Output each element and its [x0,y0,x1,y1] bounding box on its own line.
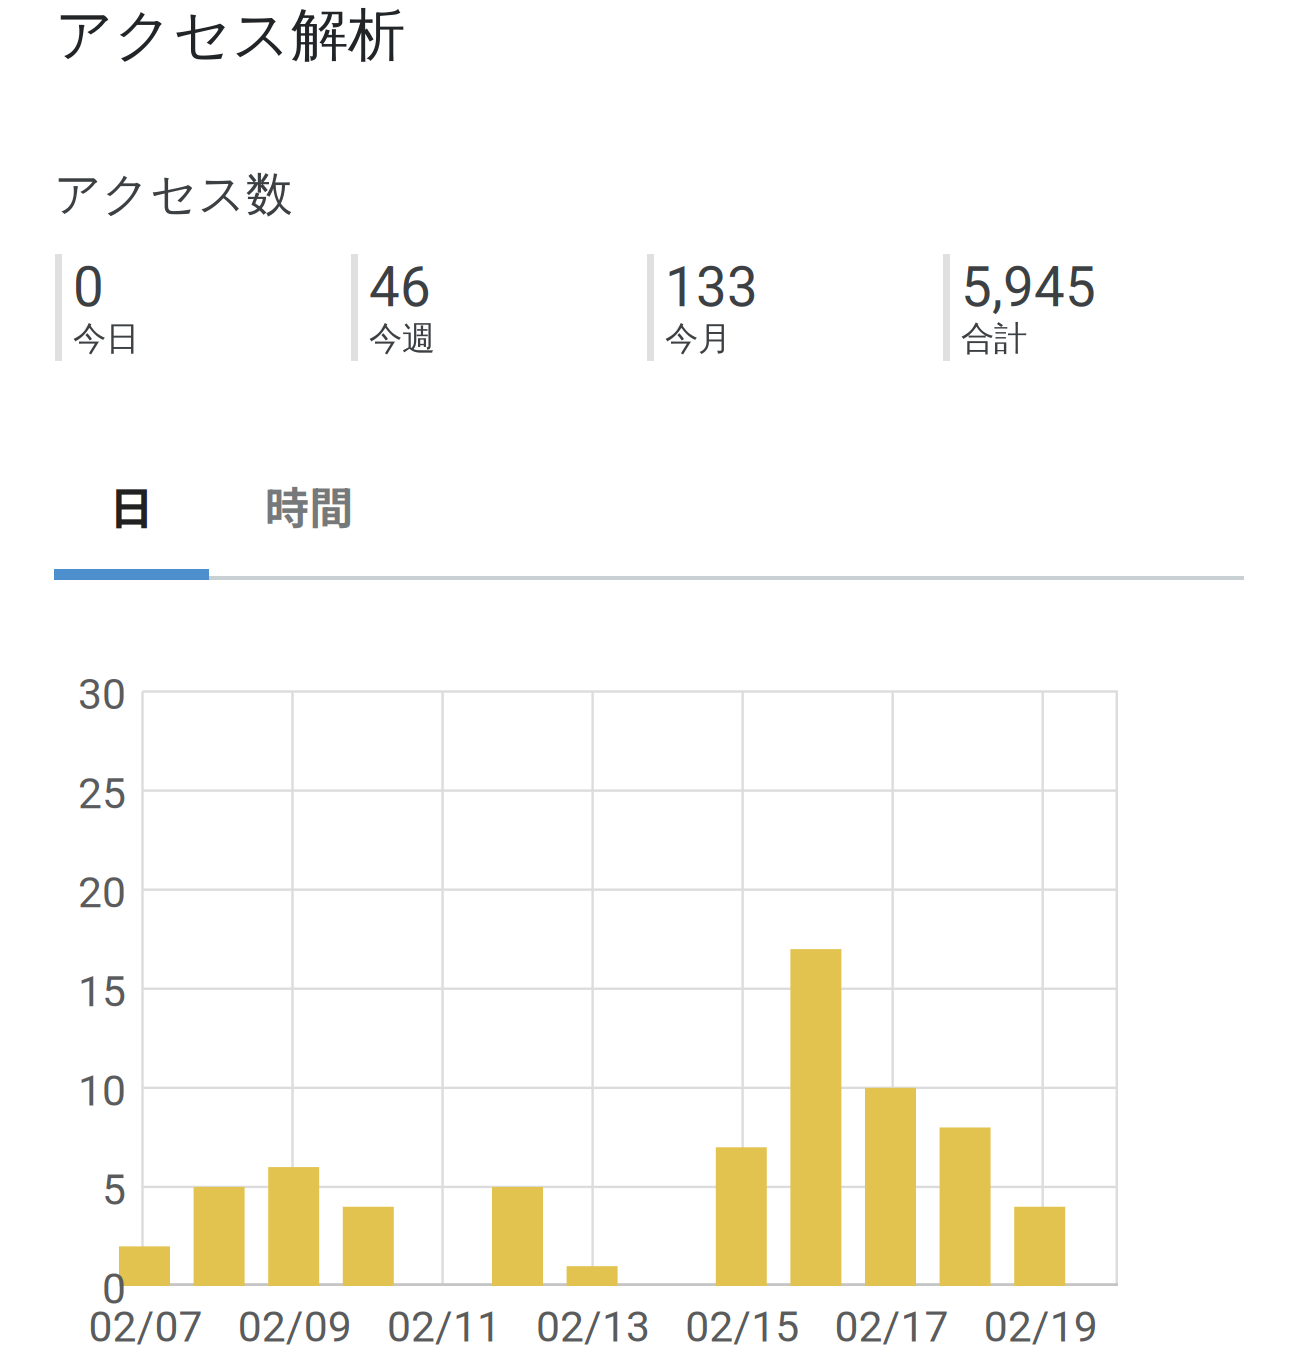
staticText: 合計 [961,317,1027,359]
staticText: 5,945 [961,255,1096,320]
staticText: 02/13 [536,1302,650,1352]
staticText: 0 [73,255,104,320]
staticText: 15 [78,967,126,1017]
staticText: 02/11 [387,1302,501,1352]
staticText: 今月 [665,317,731,359]
staticText: アクセス数 [54,165,293,224]
staticText: 46 [369,255,431,320]
staticText: 今週 [369,317,435,359]
staticText: 02/09 [238,1302,352,1352]
button[interactable]: 時間 [209,455,409,555]
staticText: 20 [78,868,126,918]
staticText: 02/19 [984,1302,1098,1352]
staticText: 02/15 [685,1302,799,1352]
button[interactable]: 日 [54,455,209,555]
staticText: 今日 [73,317,139,359]
staticText: 0 [102,1264,126,1314]
staticText: 25 [78,769,126,819]
staticText: 5 [102,1165,126,1215]
staticText: 30 [78,669,126,719]
staticText: アクセス解析 [55,0,405,71]
staticText: 日 [109,473,153,537]
staticText: 10 [78,1066,126,1116]
staticText: 02/07 [88,1302,202,1352]
staticText: 133 [665,255,758,320]
staticText: 時間 [265,473,353,537]
staticText: 02/17 [834,1302,948,1352]
